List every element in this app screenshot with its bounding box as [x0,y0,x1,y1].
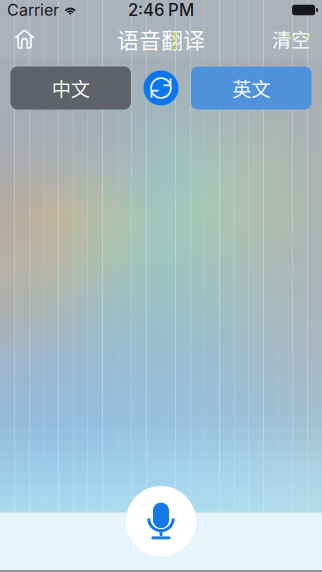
staticText: 中文 [52,74,90,102]
button[interactable]: 英文 [191,66,311,109]
staticText: 英文 [232,74,270,102]
button[interactable]: 中文 [10,66,131,109]
button[interactable]: 清空 [264,20,318,58]
button[interactable]: Home [3,20,45,58]
staticText: 2:46 PM [128,0,194,20]
staticText: 语音翻译 [117,23,205,55]
button[interactable]: Swap languages [143,70,178,105]
button[interactable]: Record [126,486,196,556]
staticText: Carrier [7,0,59,20]
staticText: 清空 [272,25,310,53]
